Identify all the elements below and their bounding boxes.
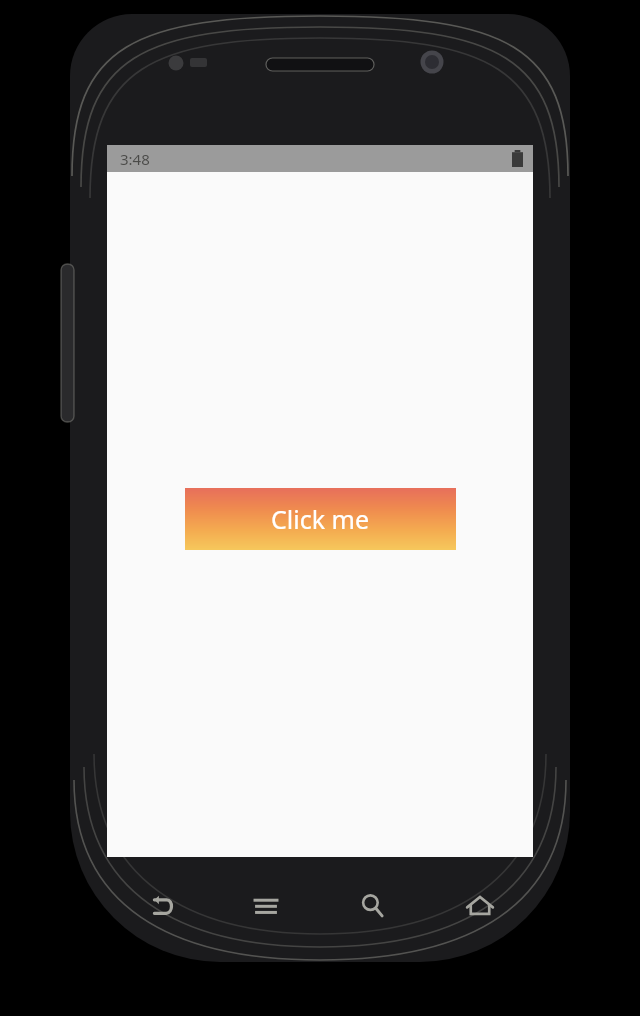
button[interactable]: Back	[107, 876, 213, 940]
button[interactable]: Search	[319, 876, 426, 940]
staticText: Click me	[271, 502, 370, 536]
button[interactable]: Home	[426, 876, 533, 940]
staticText: 3:48	[120, 149, 150, 169]
button[interactable]: Click me	[185, 488, 456, 550]
button[interactable]: Menu	[213, 876, 319, 940]
